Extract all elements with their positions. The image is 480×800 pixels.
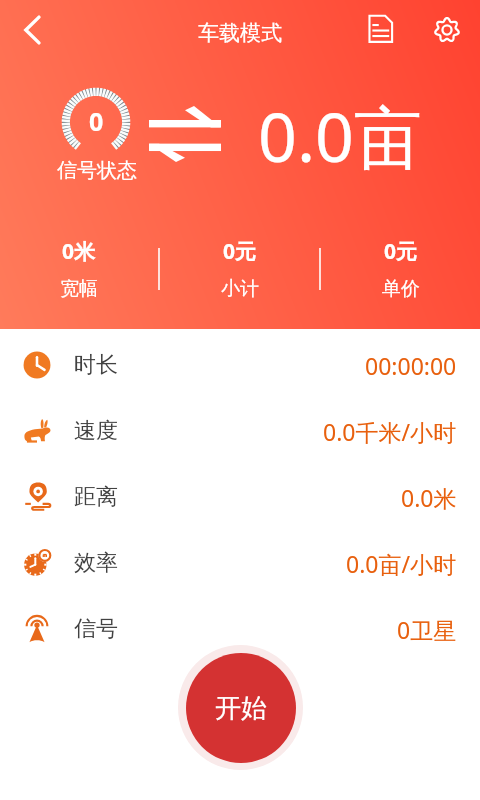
staticText: 00:00:00 <box>365 350 457 381</box>
staticText: 车载模式 <box>198 20 282 46</box>
staticText: 速度 <box>74 417 118 445</box>
button[interactable]: 0元 <box>321 237 480 301</box>
button[interactable]: 0米 <box>0 237 158 301</box>
staticText: 0.0亩/小时 <box>346 548 457 579</box>
staticText: 距离 <box>74 483 118 511</box>
staticText: 信号 <box>74 615 118 643</box>
staticText: 0 <box>89 104 104 138</box>
staticText: 0.0亩 <box>258 89 423 182</box>
button[interactable]: Settings <box>423 6 471 54</box>
staticText: 0元 <box>223 237 257 266</box>
button[interactable]: 信号 <box>0 596 480 662</box>
button[interactable]: 0元 <box>160 237 319 301</box>
button[interactable]: 速度 <box>0 398 480 464</box>
staticText: 信号状态 <box>57 158 137 183</box>
staticText: 效率 <box>74 549 118 577</box>
button[interactable]: 效率 <box>0 530 480 596</box>
button[interactable]: 距离 <box>0 464 480 530</box>
staticText: 0米 <box>62 237 96 266</box>
staticText: 单价 <box>382 277 420 301</box>
staticText: 0.0米 <box>401 482 457 513</box>
staticText: 时长 <box>74 351 118 379</box>
staticText: 宽幅 <box>60 277 98 301</box>
button[interactable]: Records <box>356 4 404 52</box>
staticText: 0元 <box>384 237 418 266</box>
button[interactable]: 时长 <box>0 332 480 398</box>
staticText: 开始 <box>215 692 267 725</box>
staticText: 0.0千米/小时 <box>323 416 457 447</box>
staticText: 小计 <box>221 277 259 301</box>
staticText: 0卫星 <box>397 614 457 645</box>
button[interactable]: 开始 <box>178 645 303 770</box>
button[interactable]: Back <box>9 6 57 54</box>
